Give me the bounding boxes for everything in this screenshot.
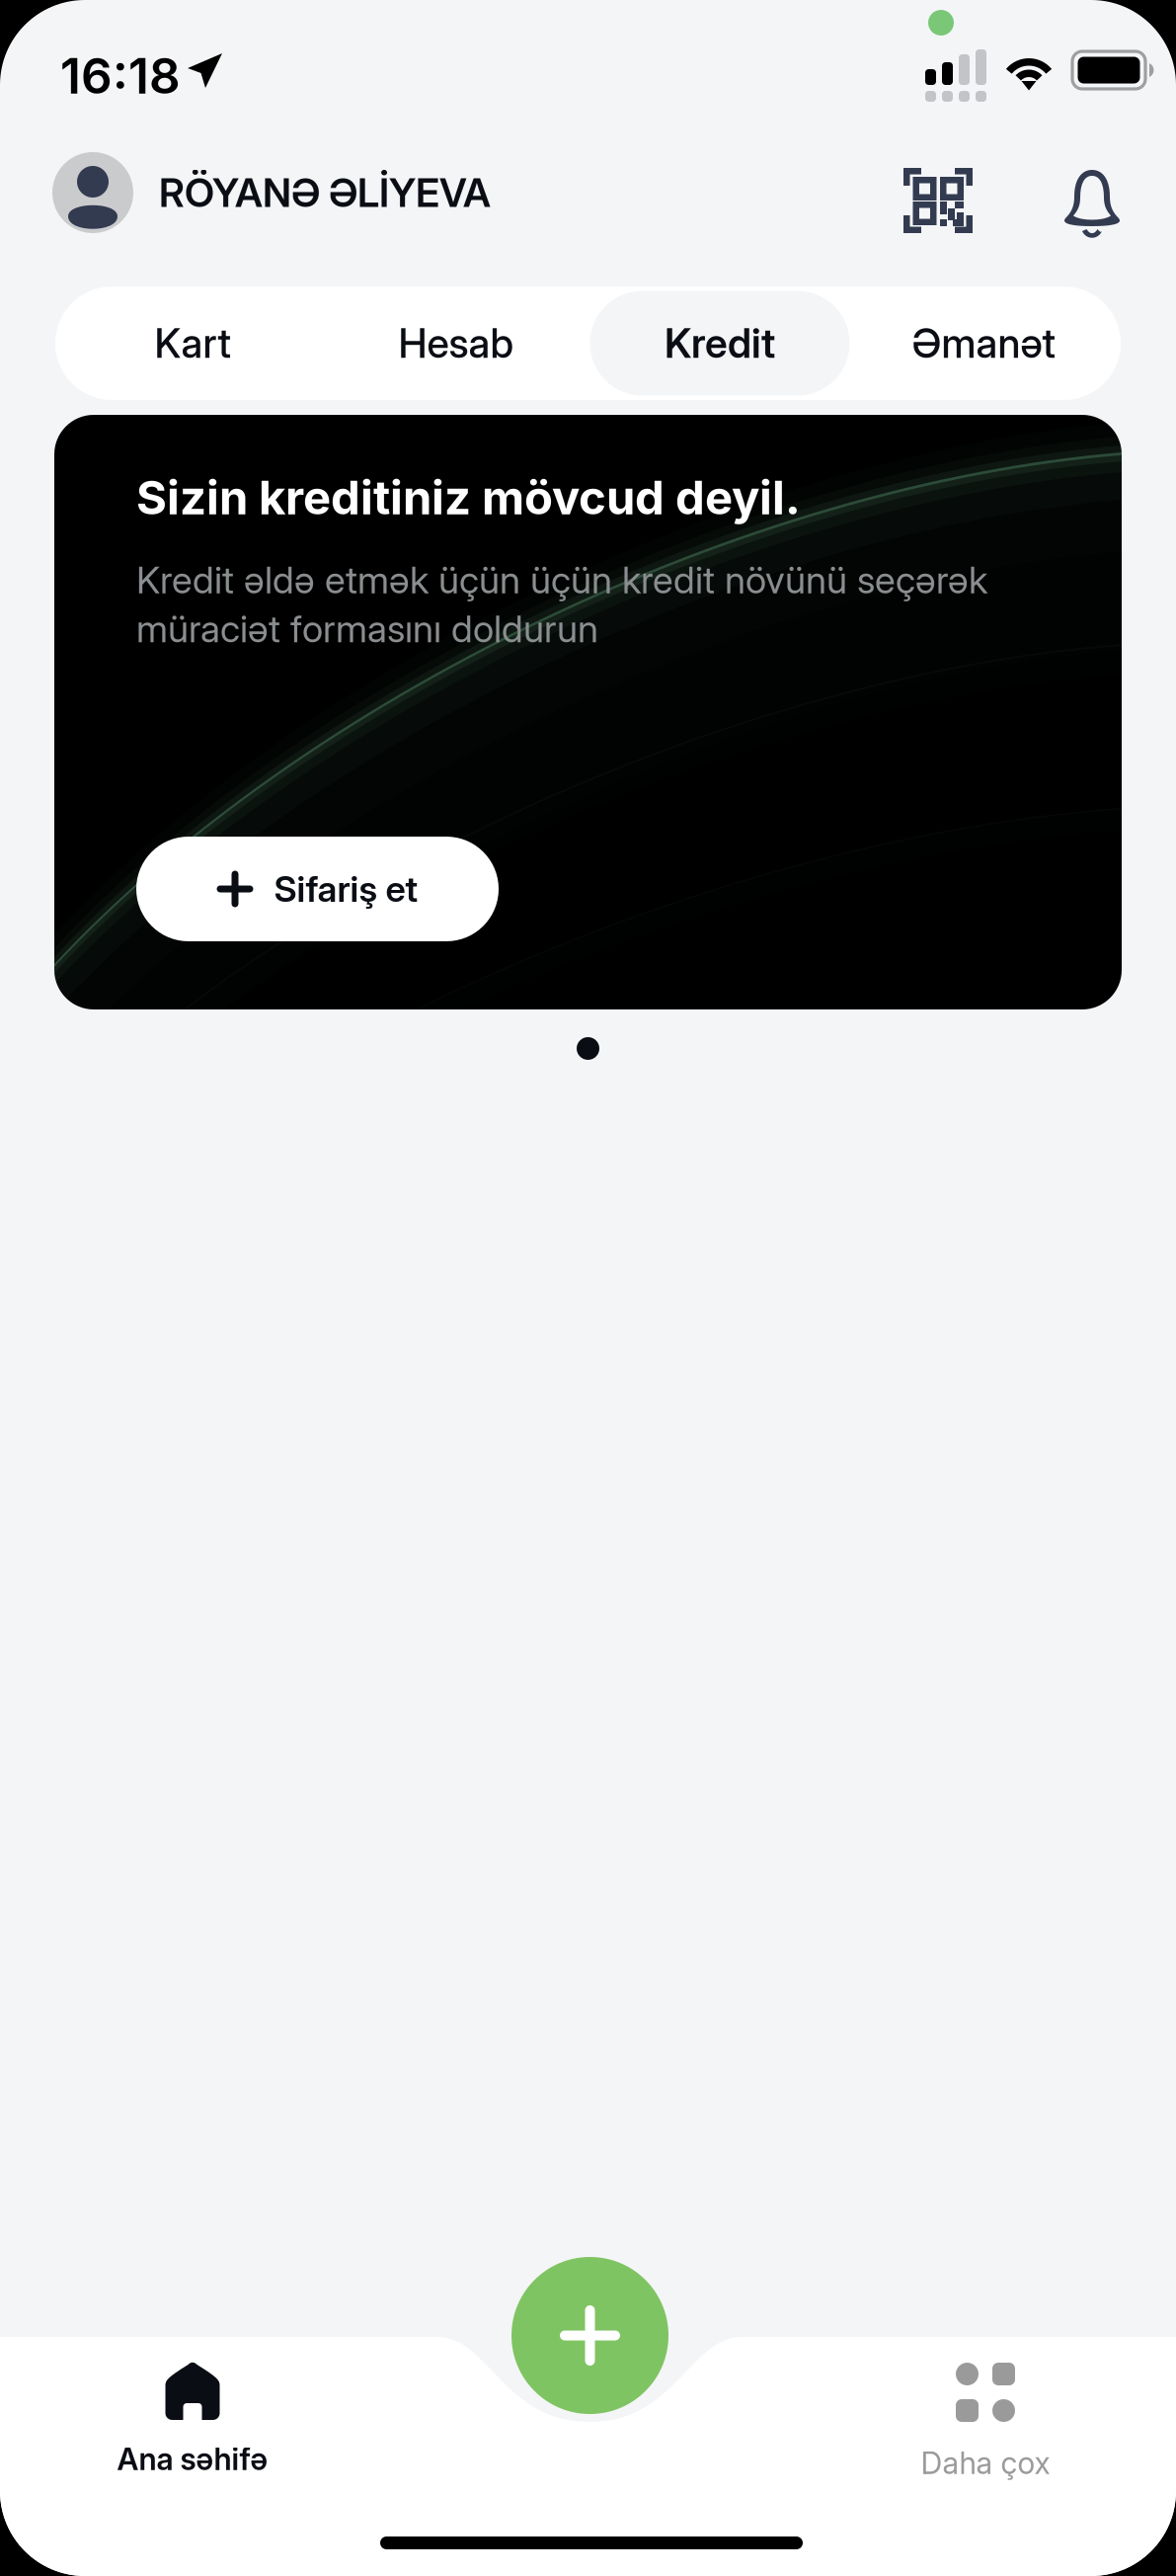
button[interactable]: Əmanət [854, 291, 1113, 396]
button[interactable]: Kart [63, 291, 322, 396]
staticText: Kredit əldə etmək üçün üçün kredit növün… [136, 557, 987, 602]
button[interactable]: Daha çox [823, 2363, 1148, 2511]
staticText: 16:18 [60, 46, 181, 105]
staticText: Kredit [665, 319, 775, 368]
button[interactable]: Sifariş et [136, 837, 499, 941]
button[interactable]: Kredit [590, 291, 850, 396]
button[interactable]: Hesab [326, 291, 586, 396]
staticText: müraciət formasını doldurun [136, 606, 598, 651]
staticText: Sifariş et [274, 867, 418, 910]
staticText: Kart [155, 319, 231, 368]
button[interactable]: Add [511, 2257, 668, 2414]
button[interactable]: Notifications [1043, 155, 1141, 250]
staticText: Ana səhifə [117, 2441, 268, 2477]
button[interactable]: Profile RÖYANƏ ƏLİYEVA [0, 143, 510, 242]
button[interactable]: Ana səhifə [30, 2363, 355, 2511]
staticText: Daha çox [921, 2445, 1050, 2481]
button[interactable]: Scan QR code [884, 148, 992, 253]
staticText: Hesab [398, 319, 514, 368]
staticText: Əmanət [912, 319, 1055, 368]
staticText: RÖYANƏ ƏLİYEVA [159, 169, 491, 217]
staticText: Sizin kreditiniz mövcud deyil. [136, 469, 801, 526]
